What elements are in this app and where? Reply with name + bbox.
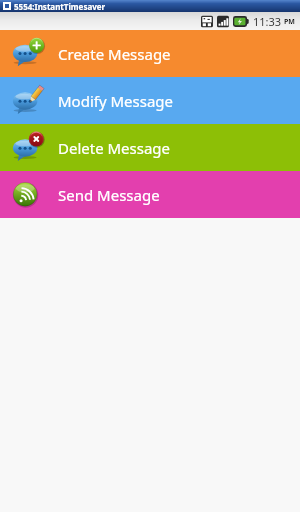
staticText: Create Message [58,44,171,64]
staticText: Modify Message [58,91,174,111]
staticText: Delete Message [58,138,171,158]
button[interactable]: Delete Message [0,124,300,171]
staticText: 11:33 [253,14,282,29]
staticText: PM [284,17,295,27]
button[interactable]: Create Message [0,30,300,77]
staticText: 5554:InstantTimesaver [14,1,106,12]
button[interactable]: Modify Message [0,77,300,124]
staticText: Send Message [58,185,160,205]
button[interactable]: Send Message [0,171,300,218]
